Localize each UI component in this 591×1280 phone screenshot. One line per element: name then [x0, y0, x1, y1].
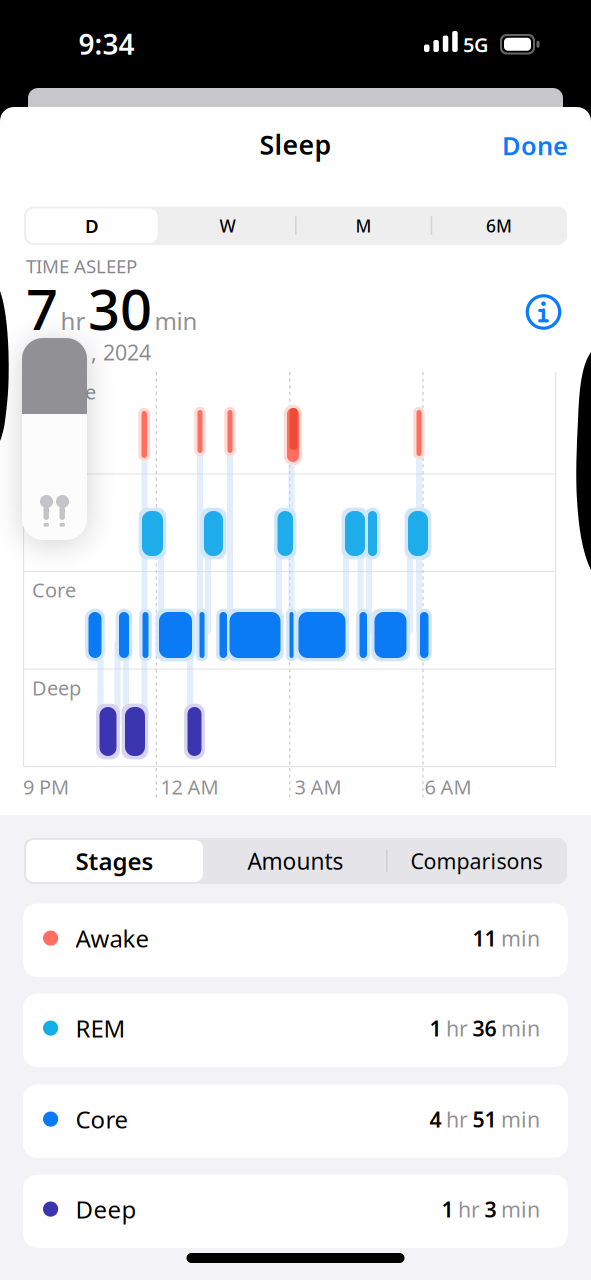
staticText: hr [446, 1014, 468, 1042]
button[interactable]: More Information [525, 294, 561, 330]
staticText: 9:34 [78, 25, 134, 63]
staticText: 11 [472, 924, 496, 952]
staticText: min [154, 305, 197, 337]
staticText: TIME ASLEEP [26, 253, 137, 278]
staticText: D [85, 213, 99, 238]
staticText: 1 [441, 1195, 453, 1223]
staticText: Deep [75, 1193, 136, 1225]
button[interactable]: Done [502, 129, 568, 162]
staticText: 12 AM [160, 773, 218, 800]
button[interactable]: 6M [434, 207, 565, 245]
staticText: 36 [472, 1014, 496, 1042]
button[interactable]: W [162, 207, 293, 245]
staticText: 1 [429, 1014, 441, 1042]
staticText: hr [60, 305, 85, 337]
staticText: Core [32, 576, 76, 603]
staticText: Core [75, 1103, 128, 1135]
staticText: 3 [484, 1195, 496, 1223]
staticText: Deep [32, 674, 81, 701]
staticText: hr [458, 1195, 480, 1223]
staticText: min [501, 1105, 540, 1133]
staticText: min [501, 1195, 540, 1223]
staticText: Awake [34, 378, 96, 405]
staticText: Stages [75, 845, 153, 877]
staticText: REM [32, 476, 73, 503]
button[interactable]: M [298, 207, 429, 245]
staticText: hr [446, 1105, 468, 1133]
staticText: , 2024 [91, 338, 151, 366]
staticText: Sleep [259, 127, 331, 162]
staticText: 9 PM [23, 773, 69, 800]
staticText: 30 [88, 271, 152, 345]
button[interactable]: D [26, 207, 157, 245]
staticText: M [355, 214, 371, 237]
staticText: Done [502, 129, 568, 162]
staticText: min [501, 924, 540, 952]
staticText: 6 AM [424, 773, 471, 800]
staticText: Awake [75, 922, 149, 954]
button[interactable]: Comparisons [388, 838, 565, 884]
staticText: 51 [472, 1105, 496, 1133]
staticText: W [220, 214, 236, 237]
staticText: Comparisons [410, 847, 542, 875]
staticText: 3 AM [294, 773, 341, 800]
staticText: Amounts [247, 846, 343, 876]
button[interactable]: Amounts [207, 838, 384, 884]
button[interactable]: Stages [26, 838, 203, 884]
staticText: 7 [26, 271, 58, 345]
staticText: 5G [463, 31, 489, 58]
staticText: 6M [486, 214, 512, 237]
staticText: REM [75, 1012, 125, 1044]
staticText: min [501, 1014, 540, 1042]
staticText: 4 [429, 1105, 441, 1133]
